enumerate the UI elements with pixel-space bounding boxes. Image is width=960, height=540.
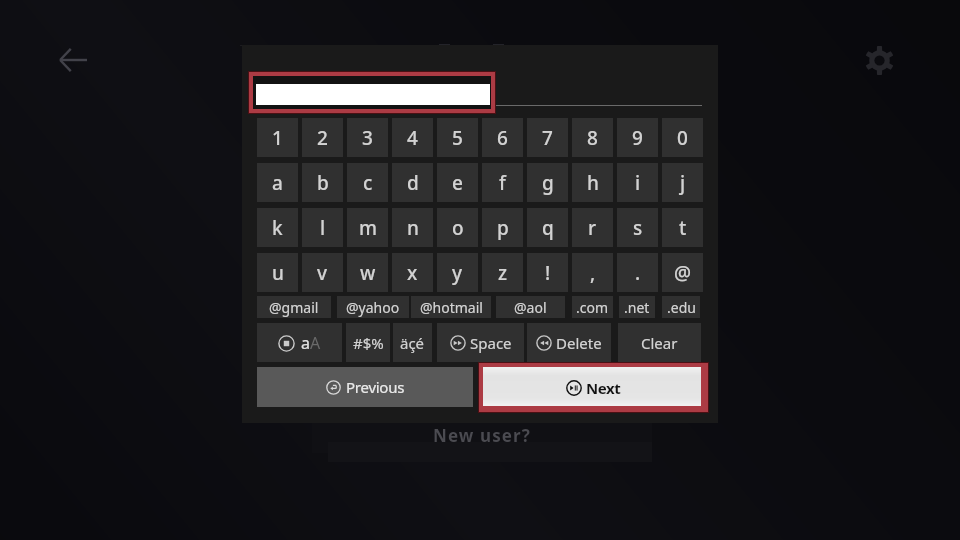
button[interactable]: 8 (572, 118, 613, 157)
staticText: äçé (400, 333, 425, 353)
button[interactable]: 1 (257, 118, 298, 157)
button[interactable]: @hotmail (411, 296, 491, 318)
button[interactable]: 5 (437, 118, 478, 157)
button[interactable]: 0 (662, 118, 703, 157)
button[interactable]: c (347, 163, 388, 202)
button[interactable]: .net (619, 296, 655, 318)
staticText: i (635, 170, 641, 196)
button[interactable]: .edu (662, 296, 700, 318)
button[interactable]: Back (53, 40, 93, 80)
button[interactable]: d (392, 163, 433, 202)
staticText: @yahoo (346, 298, 400, 317)
staticText: t (679, 215, 687, 241)
button[interactable]: äçé (393, 323, 432, 362)
button[interactable]: r (572, 208, 613, 247)
staticText: 1 (272, 125, 283, 151)
staticText: #$% (353, 333, 384, 353)
staticText: o (452, 215, 464, 241)
button[interactable]: l (302, 208, 343, 247)
button[interactable]: i (617, 163, 658, 202)
staticText: Previous (346, 377, 405, 397)
button[interactable]: q (527, 208, 568, 247)
button[interactable]: 2 (302, 118, 343, 157)
button[interactable]: w (347, 253, 388, 292)
button[interactable]: . (617, 253, 658, 292)
button[interactable]: @yahoo (337, 296, 409, 318)
staticText: New user? (433, 424, 531, 447)
staticText: x (407, 260, 418, 286)
staticText: 6 (497, 125, 508, 151)
button[interactable]: , (572, 253, 613, 292)
staticText: 3 (362, 125, 373, 151)
button[interactable]: 4 (392, 118, 433, 157)
button[interactable]: k (257, 208, 298, 247)
button[interactable]: Email text field (249, 72, 495, 113)
button[interactable]: Clear (618, 323, 701, 362)
button[interactable]: @gmail (257, 296, 331, 318)
button[interactable]: 7 (527, 118, 568, 157)
button[interactable]: ! (527, 253, 568, 292)
staticText: n (407, 215, 419, 241)
button[interactable]: b (302, 163, 343, 202)
staticText: @gmail (269, 298, 319, 317)
button[interactable]: a (257, 163, 298, 202)
button[interactable]: a (257, 323, 342, 362)
button[interactable]: z (482, 253, 523, 292)
button[interactable]: 9 (617, 118, 658, 157)
button[interactable]: u (257, 253, 298, 292)
button[interactable]: Delete (527, 323, 611, 362)
button[interactable]: New user? (312, 413, 652, 453)
button[interactable]: @ (662, 253, 703, 292)
button[interactable]: g (527, 163, 568, 202)
staticText: @aol (514, 298, 547, 317)
button[interactable]: Settings (859, 40, 899, 80)
staticText: w (360, 260, 376, 286)
staticText: 2 (317, 125, 328, 151)
button[interactable]: #$% (346, 323, 390, 362)
button[interactable]: s (617, 208, 658, 247)
button[interactable]: n (392, 208, 433, 247)
button[interactable]: v (302, 253, 343, 292)
staticText: h (587, 170, 599, 196)
button[interactable]: j (662, 163, 703, 202)
staticText: c (363, 170, 373, 196)
staticText: 9 (632, 125, 643, 151)
button[interactable]: .com (572, 296, 613, 318)
button[interactable]: x (392, 253, 433, 292)
button[interactable]: e (437, 163, 478, 202)
button[interactable]: h (572, 163, 613, 202)
button[interactable]: m (347, 208, 388, 247)
button[interactable]: f (482, 163, 523, 202)
staticText: r (588, 215, 597, 241)
staticText: f (499, 170, 506, 196)
button[interactable]: 6 (482, 118, 523, 157)
staticText: u (272, 260, 284, 286)
button[interactable]: p (482, 208, 523, 247)
staticText: g (542, 170, 554, 196)
staticText: . (635, 260, 641, 286)
button[interactable]: Next (479, 363, 708, 412)
staticText: Delete (556, 333, 602, 353)
staticText: A (310, 332, 321, 354)
staticText: a (301, 332, 310, 354)
staticText: s (633, 215, 643, 241)
staticText: a (272, 170, 283, 196)
button[interactable]: Previous (257, 367, 473, 407)
staticText: .edu (667, 298, 696, 317)
button[interactable]: 3 (347, 118, 388, 157)
staticText: Next (586, 378, 621, 398)
staticText: y (452, 260, 463, 286)
button[interactable]: t (662, 208, 703, 247)
staticText: k (272, 215, 283, 241)
button[interactable]: @aol (496, 296, 565, 318)
staticText: z (498, 260, 508, 286)
staticText: 0 (677, 125, 688, 151)
button[interactable]: o (437, 208, 478, 247)
staticText: Space (470, 333, 512, 353)
button[interactable]: y (437, 253, 478, 292)
button[interactable]: Space (437, 323, 524, 362)
staticText: l (320, 215, 326, 241)
staticText: , (590, 260, 596, 286)
staticText: m (359, 215, 377, 241)
staticText: p (497, 215, 509, 241)
